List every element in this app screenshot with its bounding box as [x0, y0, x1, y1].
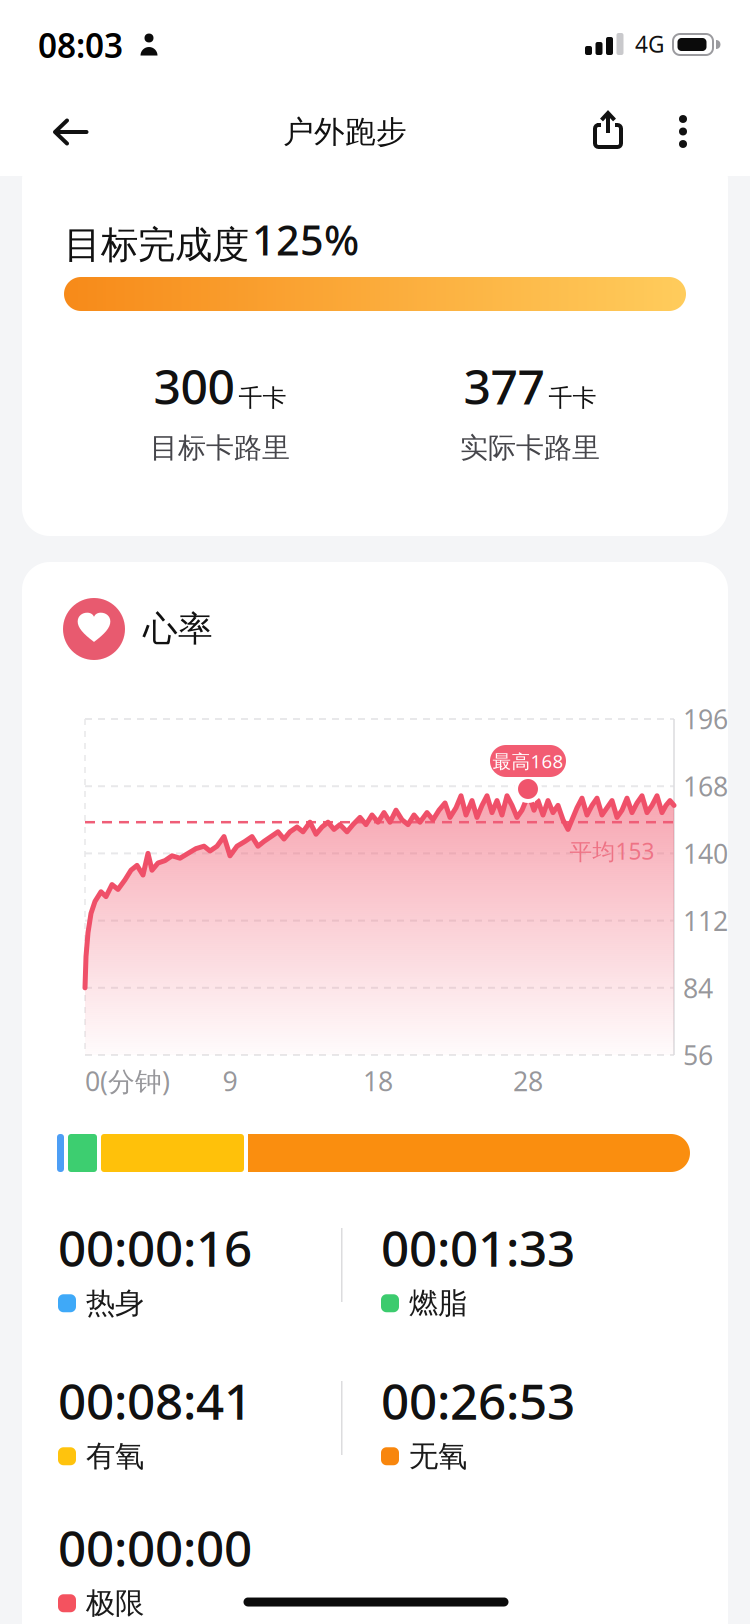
staticText: 112 — [683, 903, 728, 938]
staticText: 千卡 — [548, 383, 596, 413]
staticText: 00:08:41 — [58, 1368, 252, 1433]
staticText: 300 — [153, 354, 234, 418]
staticText: 08:03 — [38, 23, 123, 67]
staticText: 00:26:53 — [381, 1368, 575, 1433]
staticText: 心率 — [143, 608, 213, 650]
staticText: 00:00:16 — [58, 1215, 252, 1280]
button[interactable]: 返回 — [30, 98, 110, 168]
staticText: 00:01:33 — [381, 1215, 575, 1280]
staticText: 燃脂 — [409, 1285, 467, 1321]
staticText: 最高168 — [492, 749, 563, 773]
staticText: 56 — [683, 1037, 713, 1073]
button[interactable]: 分享 — [576, 100, 640, 164]
staticText: 0(分钟) — [85, 1063, 170, 1099]
staticText: 4G — [635, 29, 665, 59]
staticText: 实际卡路里 — [460, 431, 600, 465]
staticText: 125% — [252, 212, 359, 267]
staticText: 196 — [683, 701, 728, 737]
staticText: 热身 — [86, 1285, 144, 1321]
staticText: 平均153 — [569, 836, 654, 866]
staticText: 户外跑步 — [283, 113, 407, 151]
staticText: 千卡 — [238, 383, 286, 413]
staticText: 极限 — [86, 1585, 144, 1621]
staticText: 有氧 — [86, 1438, 144, 1474]
staticText: 9 — [222, 1063, 237, 1099]
staticText: 00:00:00 — [58, 1515, 252, 1580]
staticText: 18 — [363, 1063, 393, 1099]
staticText: 目标卡路里 — [150, 431, 290, 465]
button[interactable]: 更多 — [663, 100, 703, 164]
staticText: 140 — [683, 836, 728, 871]
staticText: 无氧 — [409, 1438, 467, 1474]
staticText: 168 — [683, 768, 728, 804]
staticText: 377 — [463, 354, 544, 418]
staticText: 28 — [513, 1063, 543, 1099]
staticText: 目标完成度 — [64, 222, 249, 268]
staticText: 84 — [683, 970, 713, 1005]
